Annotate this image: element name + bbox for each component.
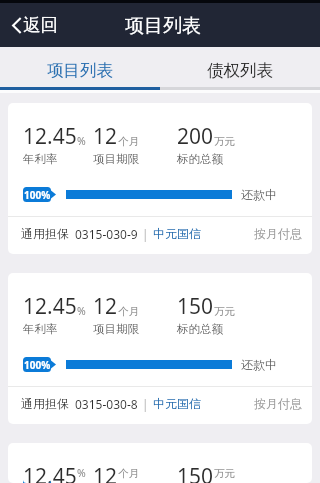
staticText: 100% <box>24 188 51 202</box>
staticText: 返回 <box>23 14 58 36</box>
staticText: 按月付息 <box>254 396 302 411</box>
staticText: | <box>142 226 149 242</box>
staticText: 12 <box>93 292 118 321</box>
staticText: 按月付息 <box>254 226 302 241</box>
staticText: 0315-030-9 <box>75 226 138 242</box>
staticText: 项目期限 <box>93 152 139 166</box>
staticText: 万元 <box>214 135 235 148</box>
staticText: 万元 <box>214 467 235 480</box>
staticText: 还款中 <box>241 187 277 202</box>
staticText: 12.45 <box>23 462 77 483</box>
staticText: 150 <box>177 462 214 483</box>
staticText: 中元国信 <box>153 226 201 241</box>
staticText: 12 <box>93 462 118 483</box>
staticText: 项目列表 <box>125 14 201 38</box>
staticText: 标的总额 <box>177 322 223 336</box>
staticText: 200 <box>177 122 214 151</box>
staticText: 个月 <box>118 305 139 318</box>
staticText: 个月 <box>118 135 139 148</box>
staticText: 年利率 <box>23 322 58 336</box>
staticText: | <box>142 396 149 412</box>
button[interactable]: 12.45 <box>8 103 312 254</box>
staticText: % <box>77 304 86 318</box>
staticText: 万元 <box>214 305 235 318</box>
staticText: 还款中 <box>241 357 277 372</box>
staticText: 12.45 <box>23 122 77 151</box>
staticText: 0315-030-8 <box>75 396 138 412</box>
button[interactable]: 债权列表 <box>160 47 320 90</box>
staticText: % <box>77 466 86 480</box>
staticText: 个月 <box>118 467 139 480</box>
staticText: 通用担保 <box>21 226 69 241</box>
staticText: 12 <box>93 122 118 151</box>
staticText: 年利率 <box>23 152 58 166</box>
staticText: 100% <box>24 358 51 372</box>
staticText: 债权列表 <box>207 60 273 81</box>
staticText: 通用担保 <box>21 396 69 411</box>
staticText: 12.45 <box>23 292 77 321</box>
staticText: 150 <box>177 292 214 321</box>
staticText: 标的总额 <box>177 152 223 166</box>
button[interactable]: 12.45 <box>8 273 312 424</box>
staticText: 项目期限 <box>93 322 139 336</box>
button[interactable]: 项目列表 <box>0 47 160 90</box>
button[interactable]: 12.45 <box>8 443 312 483</box>
button[interactable]: 返回 <box>0 3 320 47</box>
staticText: 项目列表 <box>47 60 113 81</box>
staticText: 中元国信 <box>153 396 201 411</box>
staticText: % <box>77 134 86 148</box>
